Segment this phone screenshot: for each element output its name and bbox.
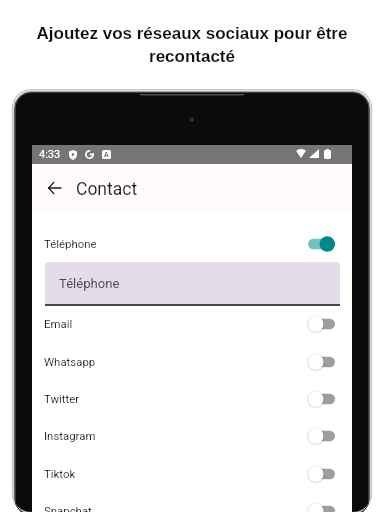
staticText: Twitter [44,392,80,405]
staticText: Tiktok [44,467,76,480]
button[interactable]: Twitter [32,380,352,417]
button[interactable]: Snapchat [32,492,352,512]
button[interactable]: Back [41,176,67,202]
button[interactable]: Téléphone [45,262,340,304]
staticText: Téléphone [44,237,97,250]
staticText: Instagram [44,429,96,442]
button[interactable]: Email [32,305,352,342]
staticText: Contact [76,179,138,200]
staticText: 4:33 [39,148,61,161]
button[interactable]: Instagram [32,417,352,454]
staticText: A [104,151,109,159]
button[interactable]: Téléphone [32,225,352,262]
staticText: Email [44,317,73,330]
staticText: Whatsapp [44,355,96,368]
button[interactable]: Whatsapp [32,343,352,380]
staticText: Téléphone [59,276,120,291]
staticText: Ajoutez vos réseaux sociaux pour être re… [18,24,366,65]
button[interactable]: Tiktok [32,455,352,492]
staticText: Snapchat [44,504,92,512]
